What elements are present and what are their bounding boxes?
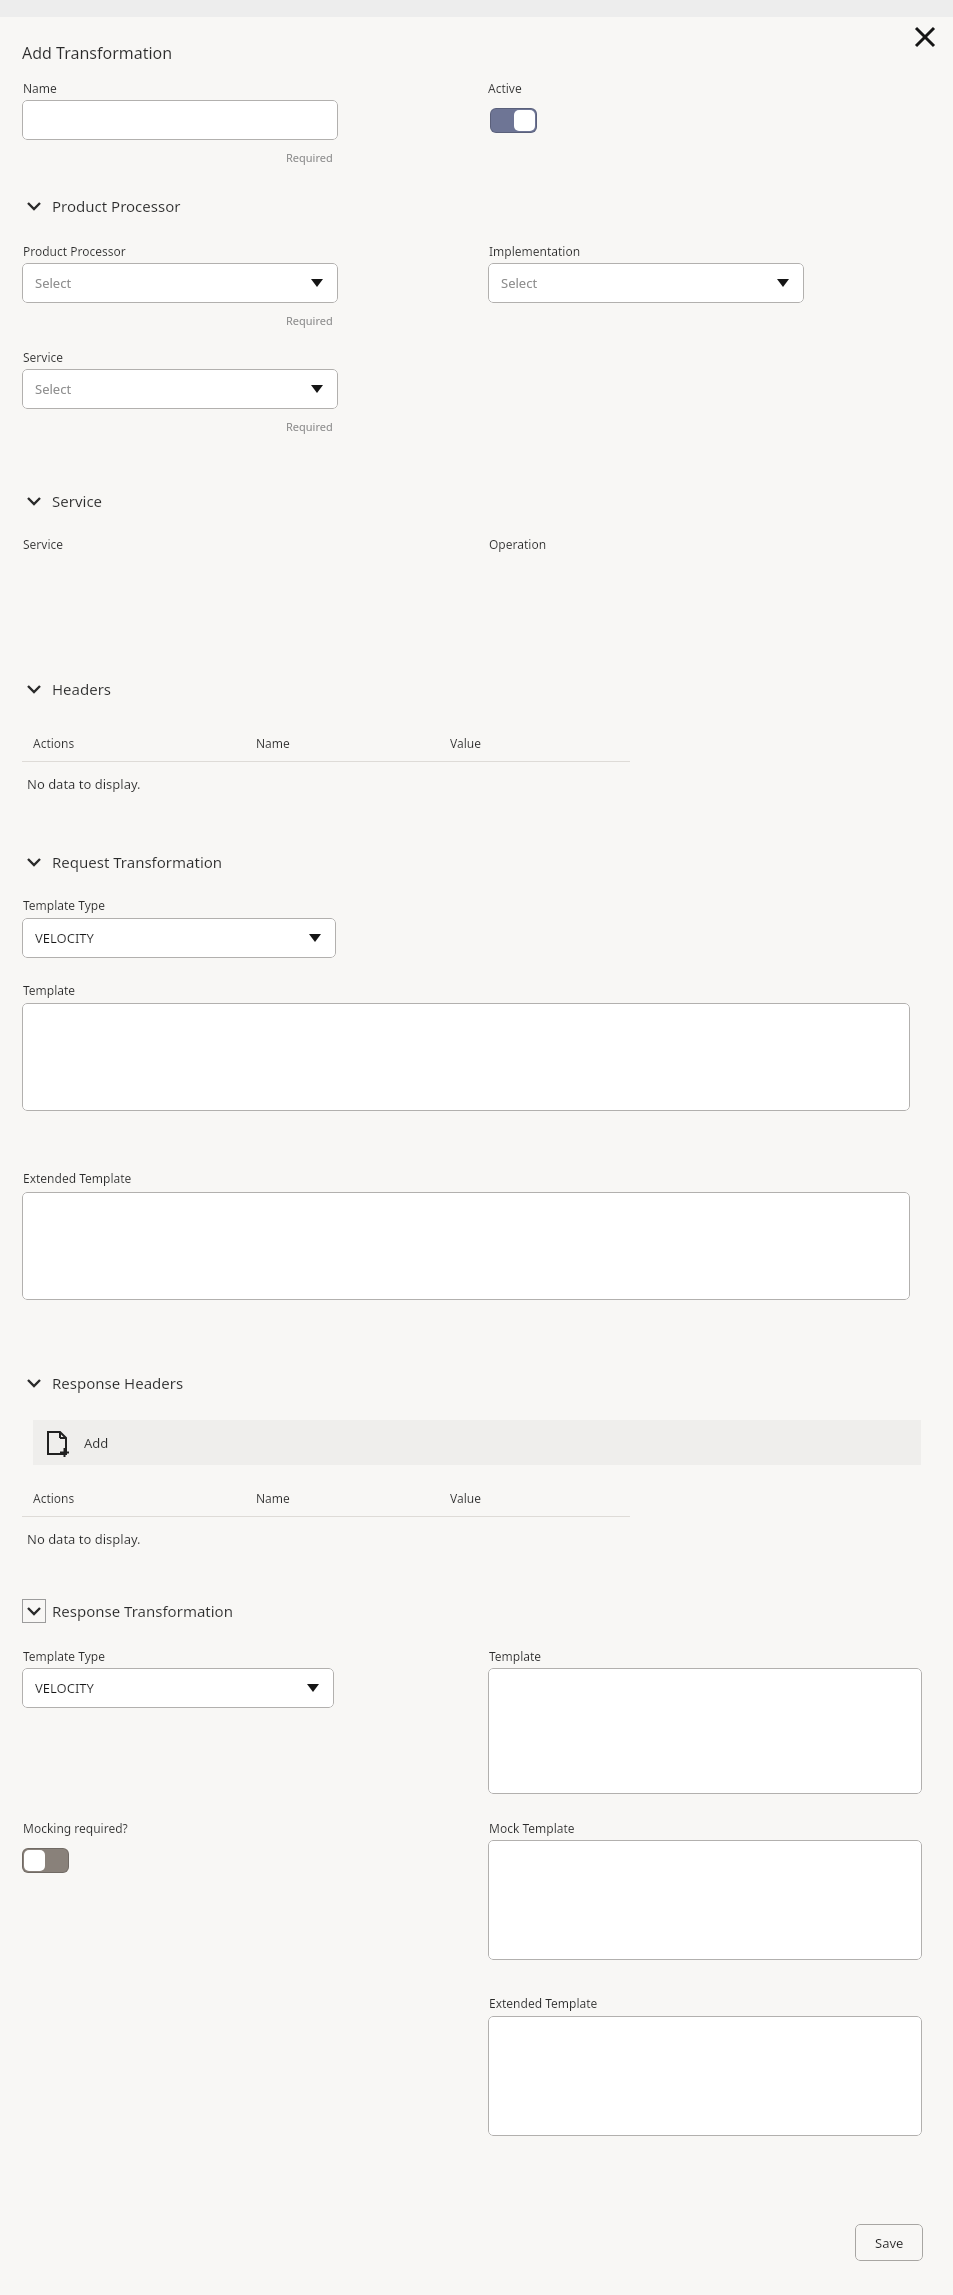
button[interactable] — [488, 1668, 922, 1794]
staticText: Select — [35, 380, 72, 398]
button[interactable]: Request Transformation — [22, 849, 342, 875]
button[interactable]: Add — [33, 1420, 921, 1465]
button[interactable]: Response Headers — [22, 1370, 342, 1396]
staticText: Product Processor — [23, 243, 126, 259]
button[interactable]: Save — [855, 2224, 923, 2261]
staticText: Product Processor — [52, 196, 181, 216]
staticText: Required — [286, 150, 333, 165]
button[interactable]: Response Transformation — [22, 1598, 342, 1624]
button[interactable]: VELOCITY — [22, 1668, 334, 1708]
staticText: Service — [23, 349, 64, 365]
staticText: Operation — [489, 536, 547, 552]
button[interactable] — [22, 1003, 910, 1111]
button[interactable]: Headers — [22, 676, 342, 702]
staticText: Value — [450, 735, 481, 751]
staticText: Headers — [52, 679, 112, 699]
staticText: Active — [488, 80, 522, 96]
staticText: Actions — [33, 735, 75, 751]
staticText: No data to display. — [27, 775, 141, 793]
staticText: Template Type — [23, 1648, 105, 1664]
staticText: Select — [501, 274, 538, 292]
button[interactable] — [488, 2016, 922, 2136]
staticText: VELOCITY — [35, 929, 94, 947]
staticText: Required — [286, 419, 333, 434]
staticText: Actions — [33, 1490, 75, 1506]
staticText: Template — [23, 982, 76, 998]
staticText: Service — [52, 491, 103, 511]
staticText: Save — [875, 2234, 904, 2252]
button[interactable]: Mocking required, off — [22, 1848, 69, 1873]
staticText: Extended Template — [489, 1995, 598, 2011]
staticText: Implementation — [489, 243, 581, 259]
staticText: Service — [23, 536, 64, 552]
staticText: Value — [450, 1490, 481, 1506]
staticText: Required — [286, 313, 333, 328]
staticText: Response Headers — [52, 1373, 184, 1393]
staticText: Name — [256, 1490, 290, 1506]
button[interactable] — [488, 1840, 922, 1960]
staticText: Add Transformation — [22, 42, 173, 64]
button[interactable] — [22, 1192, 910, 1300]
staticText: Name — [256, 735, 290, 751]
button[interactable] — [22, 100, 338, 140]
staticText: Name — [23, 80, 57, 96]
button[interactable]: Active, on — [490, 108, 537, 133]
staticText: No data to display. — [27, 1530, 141, 1548]
staticText: Request Transformation — [52, 852, 223, 872]
staticText: Select — [35, 274, 72, 292]
button[interactable]: Product Processor — [22, 193, 342, 219]
button[interactable]: Close — [906, 18, 944, 56]
button[interactable]: Select — [488, 263, 804, 303]
staticText: Add — [84, 1434, 109, 1452]
button[interactable]: Service — [22, 488, 342, 514]
staticText: Mock Template — [489, 1820, 575, 1836]
staticText: Extended Template — [23, 1170, 132, 1186]
staticText: Response Transformation — [52, 1601, 233, 1621]
staticText: Template Type — [23, 897, 105, 913]
staticText: Template — [489, 1648, 542, 1664]
button[interactable]: Select — [22, 263, 338, 303]
button[interactable]: VELOCITY — [22, 918, 336, 958]
staticText: VELOCITY — [35, 1679, 94, 1697]
staticText: Mocking required? — [23, 1820, 128, 1836]
button[interactable]: Select — [22, 369, 338, 409]
